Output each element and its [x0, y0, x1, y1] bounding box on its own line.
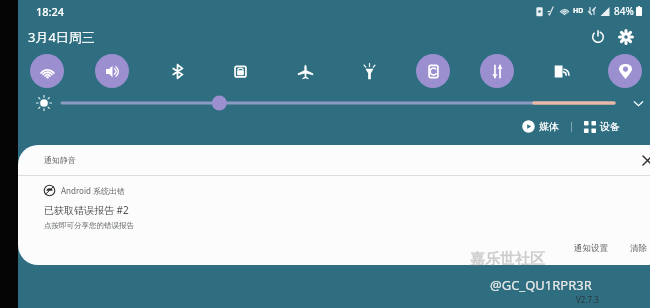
staticText: 点按即可分享您的错误报告	[44, 221, 134, 230]
button[interactable]: 设备	[580, 118, 624, 135]
button[interactable]: Android 系统出错	[18, 181, 650, 230]
staticText: Android 系统出错	[61, 185, 126, 196]
staticText: 通知设置	[574, 243, 608, 254]
button[interactable]: Wi-Fi	[30, 54, 64, 88]
staticText: 3月4日周三	[28, 28, 95, 46]
button[interactable]: Secure lock	[223, 54, 257, 88]
button[interactable]: Airplane mode	[288, 54, 322, 88]
button[interactable]: Power off	[584, 23, 612, 51]
staticText: 设备	[600, 120, 620, 133]
button[interactable]: Screen capture	[544, 54, 578, 88]
staticText: 84%	[614, 4, 634, 18]
button[interactable]: 清除	[625, 238, 650, 259]
staticText: 通知静音	[44, 155, 76, 165]
button[interactable]: Close	[636, 149, 650, 171]
staticText: @GC_QU1RPR3R	[490, 276, 592, 294]
button[interactable]: Location	[608, 54, 642, 88]
staticText: 媒体	[539, 120, 559, 133]
button[interactable]: Mobile data	[480, 54, 514, 88]
staticText: V2.7.3	[576, 294, 599, 305]
button[interactable]: Sound	[95, 54, 129, 88]
button[interactable]: Settings	[612, 23, 640, 51]
staticText: HD	[573, 6, 584, 16]
button[interactable]: 媒体	[518, 118, 563, 135]
button[interactable]: Auto rotate	[416, 54, 450, 88]
staticText: 18:24	[36, 4, 65, 19]
staticText: 已获取错误报告 #2	[44, 203, 129, 217]
staticText: 嘉乐世社区	[470, 250, 545, 269]
button[interactable]: Expand	[626, 92, 650, 114]
button[interactable]: Brightness	[62, 96, 614, 110]
button[interactable]: 通知设置	[569, 238, 613, 259]
button[interactable]: Bluetooth	[160, 54, 194, 88]
button[interactable]: Flashlight	[352, 54, 386, 88]
staticText: 清除	[630, 243, 647, 254]
